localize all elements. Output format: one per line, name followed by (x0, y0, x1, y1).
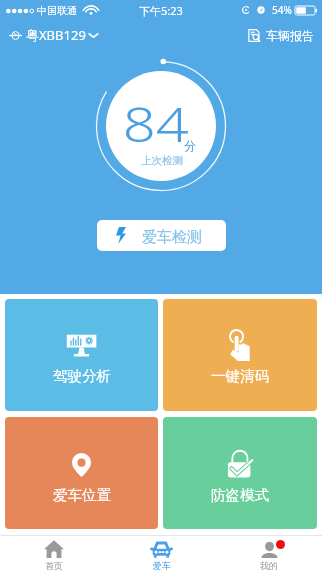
button[interactable]: 爱车 (108, 535, 215, 572)
button[interactable]: 爱车检测 (97, 220, 226, 251)
staticText: 爱车位置 (53, 486, 111, 504)
button[interactable]: 驾驶分析 (5, 299, 158, 411)
staticText: 上次检测 (141, 154, 183, 167)
button[interactable]: 粤XBB129 (0, 22, 107, 48)
staticText: 车辆报告 (266, 28, 314, 43)
staticText: 54% (272, 3, 292, 17)
button[interactable]: 车辆报告 (239, 24, 322, 47)
staticText: 我的 (260, 560, 278, 571)
staticText: 分 (184, 138, 196, 153)
button[interactable]: 首页 (0, 535, 108, 572)
button[interactable]: 防盗模式 (163, 417, 317, 529)
staticText: 首页 (45, 560, 63, 571)
staticText: 爱车 (153, 560, 171, 571)
button[interactable]: 爱车位置 (5, 417, 158, 529)
staticText: 84 (123, 90, 189, 156)
staticText: 防盗模式 (211, 486, 269, 504)
button[interactable]: 我的 (215, 535, 322, 572)
staticText: 下午5:23 (139, 3, 183, 18)
staticText: 驾驶分析 (53, 367, 111, 385)
staticText: 中国联通 (37, 4, 77, 17)
staticText: 粤XBB129 (26, 26, 86, 44)
staticText: 爱车检测 (142, 228, 202, 247)
staticText: 一键清码 (211, 367, 269, 385)
button[interactable]: 一键清码 (163, 299, 317, 411)
